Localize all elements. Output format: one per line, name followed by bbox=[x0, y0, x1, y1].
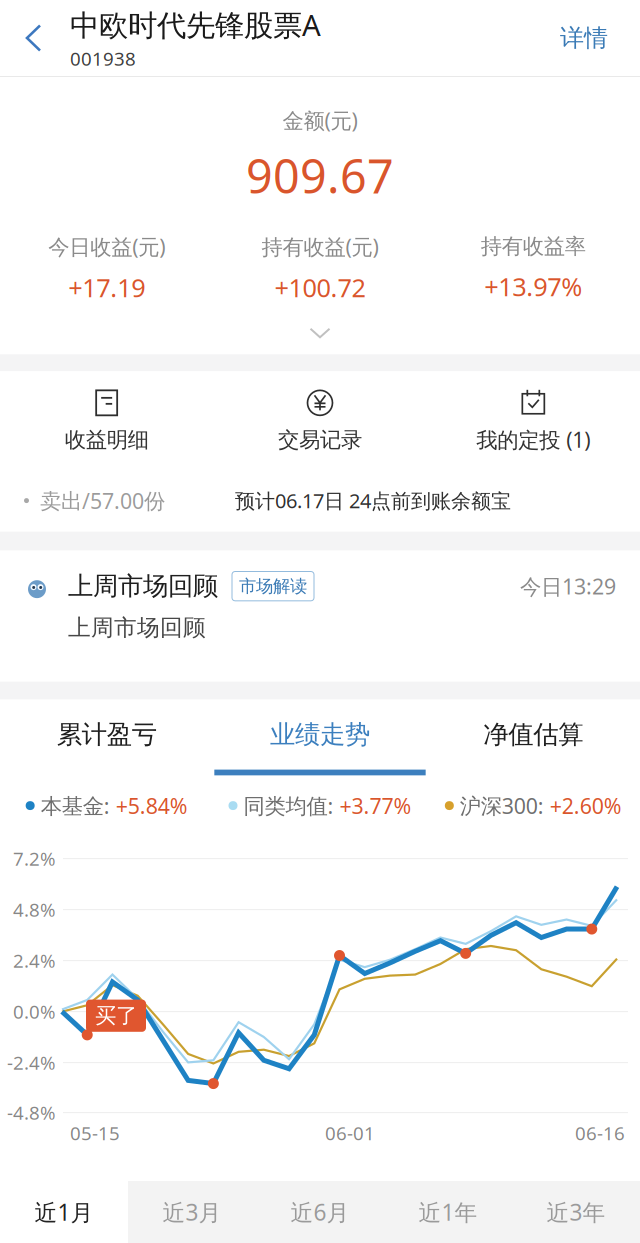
staticText: 909.67 bbox=[246, 144, 394, 206]
button[interactable]: 上周市场回顾 bbox=[0, 551, 640, 682]
staticText: +100.72 bbox=[274, 271, 365, 304]
button[interactable]: 业绩走势 bbox=[213, 700, 427, 776]
staticText: 近6月 bbox=[290, 1197, 349, 1227]
staticText: +2.60% bbox=[550, 791, 622, 820]
staticText: 7.2% bbox=[13, 846, 56, 871]
button[interactable]: 卖出/57.00份 bbox=[0, 470, 640, 532]
staticText: +17.19 bbox=[68, 271, 145, 304]
button[interactable]: Back bbox=[0, 23, 70, 52]
button[interactable]: 近1月 bbox=[0, 1181, 128, 1243]
staticText: 沪深300: bbox=[460, 791, 544, 820]
button[interactable]: 近3月 bbox=[128, 1181, 256, 1243]
staticText: 近3月 bbox=[162, 1197, 221, 1227]
staticText: 预计06.17日 24点前到账余额宝 bbox=[235, 487, 511, 514]
button[interactable]: 近6月 bbox=[256, 1181, 384, 1243]
staticText: 本基金: bbox=[41, 791, 110, 820]
staticText: 近1年 bbox=[418, 1197, 477, 1227]
button[interactable]: 净值估算 bbox=[427, 700, 640, 776]
staticText: 持有收益率 bbox=[481, 233, 586, 260]
staticText: 上周市场回顾 bbox=[68, 614, 206, 641]
staticText: 交易记录 bbox=[278, 427, 362, 453]
staticText: 业绩走势 bbox=[270, 719, 370, 750]
staticText: 0.0% bbox=[13, 999, 56, 1024]
staticText: +13.97% bbox=[484, 270, 582, 303]
button[interactable]: 详情 bbox=[534, 9, 640, 67]
staticText: 05-15 bbox=[70, 1121, 120, 1145]
staticText: 2.4% bbox=[13, 948, 56, 973]
staticText: 卖出/57.00份 bbox=[40, 486, 165, 515]
staticText: 近1月 bbox=[34, 1197, 93, 1227]
staticText: 上周市场回顾 bbox=[68, 571, 218, 602]
staticText: 06-01 bbox=[325, 1121, 375, 1145]
button[interactable]: 近1年 bbox=[384, 1181, 512, 1243]
button[interactable]: 收益明细 bbox=[0, 372, 213, 469]
staticText: 买了 bbox=[95, 1003, 137, 1029]
staticText: +5.84% bbox=[116, 791, 188, 820]
staticText: 市场解读 bbox=[239, 575, 307, 597]
staticText: 净值估算 bbox=[483, 719, 583, 750]
staticText: -2.4% bbox=[7, 1050, 56, 1075]
button[interactable]: 近3年 bbox=[512, 1181, 640, 1243]
staticText: 今日收益(元) bbox=[48, 232, 165, 261]
staticText: 收益明细 bbox=[65, 427, 149, 453]
button[interactable]: 累计盈亏 bbox=[0, 700, 213, 776]
staticText: 4.8% bbox=[13, 897, 56, 922]
staticText: 我的定投 (1) bbox=[476, 425, 590, 454]
staticText: 详情 bbox=[560, 23, 608, 53]
staticText: +3.77% bbox=[339, 791, 411, 820]
staticText: -4.8% bbox=[7, 1100, 56, 1125]
staticText: 同类均值: bbox=[243, 791, 333, 820]
staticText: 持有收益(元) bbox=[261, 232, 378, 261]
button[interactable]: 交易记录 bbox=[213, 372, 427, 469]
staticText: 001938 bbox=[70, 46, 136, 71]
button[interactable]: 我的定投 (1) bbox=[427, 371, 640, 470]
staticText: 近3年 bbox=[546, 1197, 605, 1227]
staticText: 06-16 bbox=[575, 1121, 625, 1145]
staticText: 今日13:29 bbox=[520, 572, 616, 600]
staticText: 金额(元) bbox=[282, 106, 357, 134]
staticText: 累计盈亏 bbox=[57, 719, 157, 750]
staticText: 中欧时代先锋股票A bbox=[70, 5, 321, 44]
